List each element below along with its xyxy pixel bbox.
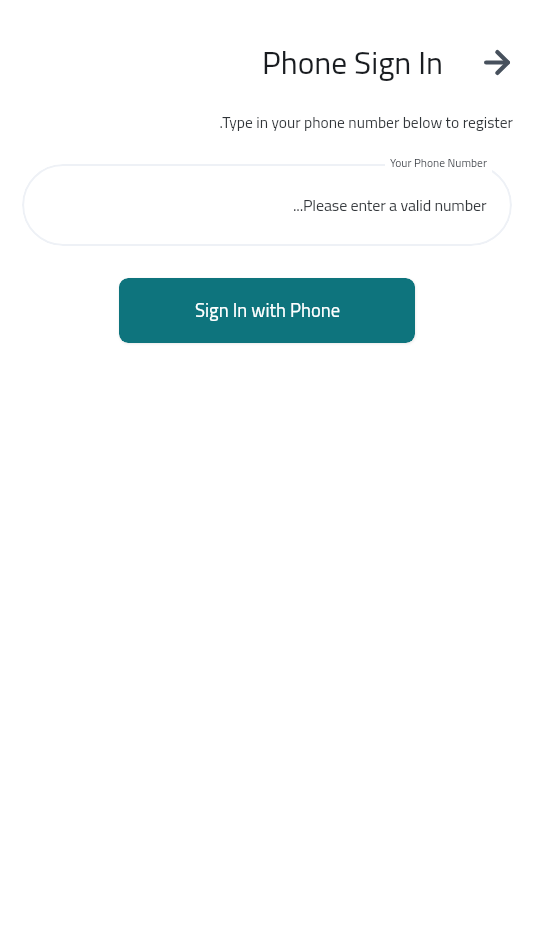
- staticText: Your Phone Number: [390, 152, 487, 174]
- staticText: ...Please enter a valid number: [293, 190, 487, 220]
- button[interactable]: Continue: [473, 38, 521, 86]
- button[interactable]: ...Please enter a valid number: [22, 164, 512, 246]
- staticText: .Type in your phone number below to regi…: [0, 108, 513, 137]
- staticText: Sign In with Phone: [195, 293, 340, 328]
- staticText: Phone Sign In: [0, 33, 443, 92]
- button[interactable]: Sign In with Phone: [119, 278, 415, 343]
